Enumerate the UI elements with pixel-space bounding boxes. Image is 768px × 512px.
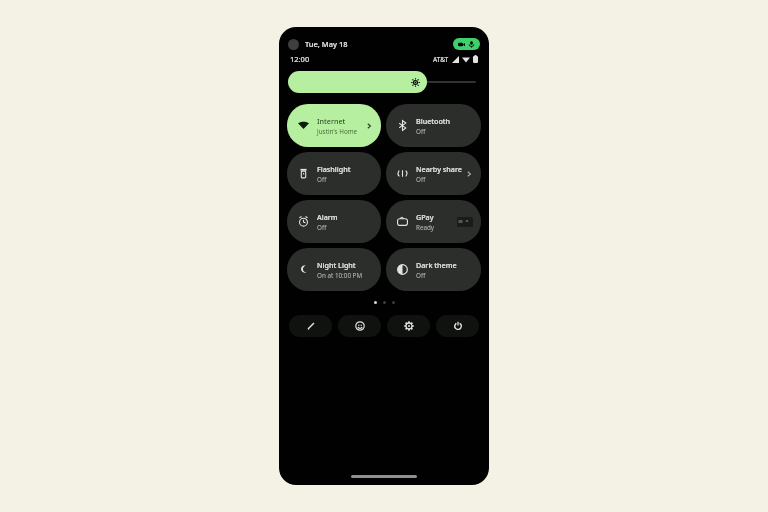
staticText: Off — [416, 271, 426, 280]
button[interactable]: Camera and microphone active — [453, 38, 480, 50]
button[interactable]: Nearby share — [386, 152, 481, 195]
staticText: Dark theme — [416, 260, 457, 270]
staticText: AT&T — [433, 55, 449, 64]
button[interactable]: Bluetooth — [386, 104, 481, 147]
staticText: Nearby share — [416, 164, 462, 174]
button[interactable]: Power — [436, 315, 479, 337]
button[interactable]: Dark theme — [386, 248, 481, 291]
staticText: GPay — [416, 212, 434, 222]
button[interactable]: Alarm — [287, 200, 381, 243]
button[interactable]: Edit — [289, 315, 332, 337]
staticText: Night Light — [317, 260, 356, 270]
button[interactable]: User profile — [288, 39, 299, 50]
staticText: Flashlight — [317, 164, 351, 174]
button[interactable]: Internet — [287, 104, 381, 147]
button[interactable]: Flashlight — [287, 152, 381, 195]
button[interactable]: Account — [338, 315, 381, 337]
staticText: Off — [317, 175, 327, 184]
staticText: 12:00 — [290, 54, 310, 64]
staticText: On at 10:00 PM — [317, 271, 363, 280]
button[interactable]: Night Light — [287, 248, 381, 291]
staticText: Alarm — [317, 212, 338, 222]
staticText: Internet — [317, 116, 346, 126]
staticText: Off — [416, 175, 426, 184]
button[interactable]: Brightness — [288, 71, 480, 93]
button[interactable]: Settings — [387, 315, 430, 337]
staticText: Tue, May 18 — [305, 39, 348, 49]
staticText: Justin's Home — [317, 127, 358, 136]
staticText: Off — [416, 127, 426, 136]
staticText: Ready — [416, 223, 435, 232]
staticText: Bluetooth — [416, 116, 451, 126]
button[interactable]: GPay — [386, 200, 481, 243]
staticText: Off — [317, 223, 327, 232]
